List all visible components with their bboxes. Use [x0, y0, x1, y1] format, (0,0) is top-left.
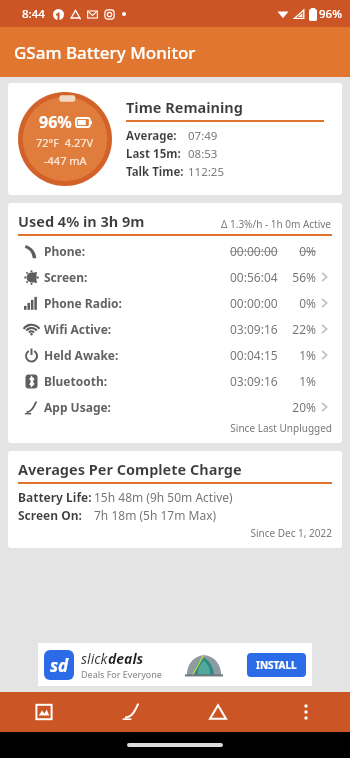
staticText: 0% — [278, 243, 316, 259]
staticText: sd — [50, 654, 69, 677]
staticText: 00:00:00 — [230, 295, 278, 311]
button[interactable]: More options — [262, 692, 350, 732]
staticText: 07:49 — [188, 128, 218, 144]
staticText: Phone: — [44, 243, 86, 259]
staticText: Since Dec 1, 2022 — [18, 526, 332, 540]
staticText: Time Remaining — [126, 97, 243, 117]
staticText: 20% — [278, 399, 316, 415]
staticText: 03:09:16 — [230, 321, 278, 337]
button[interactable]: Held Awake: — [18, 342, 332, 368]
staticText: Used 4% in 3h 9m — [18, 211, 145, 231]
staticText: 1% — [278, 373, 316, 389]
button[interactable]: INSTALL — [247, 653, 306, 677]
staticText: Held Awake: — [44, 347, 119, 363]
staticText: 03:09:16 — [230, 373, 278, 389]
button[interactable]: Screen: — [18, 264, 332, 290]
button[interactable]: App Usage: — [18, 394, 332, 420]
staticText: 96% — [319, 6, 342, 22]
button[interactable]: Wifi Active: — [18, 316, 332, 342]
button[interactable]: App usage — [87, 692, 174, 732]
button[interactable]: Bluetooth: — [18, 368, 332, 394]
staticText: 56% — [278, 269, 316, 285]
staticText: 96% — [39, 111, 72, 133]
staticText: Bluetooth: — [44, 373, 108, 389]
button[interactable]: Phone: — [18, 238, 332, 264]
staticText: Last 15m: — [126, 146, 188, 162]
staticText: Averages Per Complete Charge — [18, 459, 242, 479]
staticText: 72°F 4.27V — [36, 135, 94, 150]
staticText: Δ 1.3%/h - 1h 0m Active — [221, 217, 332, 231]
button[interactable]: sd — [38, 643, 312, 686]
staticText: Talk Time: — [126, 164, 188, 180]
staticText: 112:25 — [188, 164, 224, 180]
staticText: 08:53 — [188, 146, 218, 162]
staticText: 7h 18m (5h 17m Max) — [94, 507, 217, 523]
staticText: Average: — [126, 128, 188, 144]
staticText: Screen On: — [18, 507, 94, 523]
staticText: 15h 48m (9h 50m Active) — [94, 489, 233, 505]
staticText: Screen: — [44, 269, 88, 285]
staticText: 22% — [278, 321, 316, 337]
staticText: Wifi Active: — [44, 321, 112, 337]
staticText: Deals For Everyone — [81, 668, 162, 680]
staticText: 00:56:04 — [230, 269, 278, 285]
staticText: Battery Life: — [18, 489, 94, 505]
staticText: -447 mA — [44, 153, 87, 168]
staticText: 1% — [278, 347, 316, 363]
staticText: Phone Radio: — [44, 295, 122, 311]
staticText: slick — [81, 649, 108, 668]
button[interactable]: Phone Radio: — [18, 290, 332, 316]
staticText: INSTALL — [256, 658, 297, 672]
staticText: 0% — [278, 295, 316, 311]
staticText: deals — [108, 649, 144, 668]
staticText: 8:44 — [22, 6, 45, 22]
button[interactable]: Stats — [174, 692, 262, 732]
staticText: GSam Battery Monitor — [14, 41, 196, 64]
staticText: 00:04:15 — [230, 347, 278, 363]
staticText: 00:00:00 — [230, 243, 278, 259]
staticText: App Usage: — [44, 399, 111, 415]
staticText: Since Last Unplugged — [18, 421, 332, 435]
button[interactable]: Charts — [0, 692, 87, 732]
